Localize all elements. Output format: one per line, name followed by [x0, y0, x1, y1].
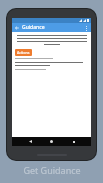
button[interactable]: Actions [15, 49, 32, 56]
button[interactable]: Back [27, 138, 34, 145]
button[interactable]: Home [48, 138, 55, 145]
staticText: Guidance [22, 24, 45, 31]
button[interactable]: Recent apps [70, 138, 77, 145]
staticText: Get Guidance [23, 164, 81, 176]
button[interactable]: Back [13, 24, 21, 32]
button[interactable]: More options [82, 24, 90, 32]
staticText: Actions [17, 50, 30, 55]
